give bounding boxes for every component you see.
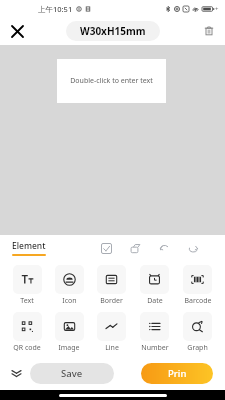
staticText: Barcode <box>184 296 212 306</box>
button[interactable]: Close <box>6 20 28 42</box>
button[interactable]: Prin <box>141 363 213 384</box>
staticText: Save <box>61 367 83 380</box>
button[interactable]: Delete <box>199 21 219 41</box>
staticText: Icon <box>62 296 77 306</box>
button[interactable]: Graph <box>176 312 219 353</box>
button[interactable]: Element <box>12 240 46 256</box>
button[interactable]: Copy <box>127 240 143 256</box>
button[interactable]: Double-click to enter text <box>57 59 166 103</box>
button[interactable]: Select <box>98 240 114 256</box>
button[interactable]: Image <box>48 312 90 353</box>
button[interactable]: Line <box>90 312 133 353</box>
staticText: QR code <box>13 343 41 353</box>
button[interactable]: Border <box>90 265 133 306</box>
button[interactable]: W30xH15mm <box>66 21 160 41</box>
staticText: Date <box>147 296 163 306</box>
button[interactable]: Date <box>133 265 176 306</box>
staticText: + <box>215 5 219 13</box>
button[interactable]: Number <box>133 312 176 353</box>
staticText: Element <box>12 240 46 252</box>
staticText: Text <box>20 296 34 306</box>
staticText: W30xH15mm <box>80 24 146 38</box>
staticText: 上午10:51 <box>38 4 73 14</box>
staticText: Number <box>141 343 169 353</box>
button[interactable]: Undo <box>156 240 172 256</box>
button[interactable]: Redo <box>185 240 201 256</box>
button[interactable]: Barcode <box>176 265 219 306</box>
button[interactable]: Collapse <box>6 363 26 383</box>
staticText: Border <box>100 296 123 306</box>
staticText: Image <box>58 343 80 353</box>
staticText: Prin <box>168 367 187 380</box>
button[interactable]: Text <box>6 265 48 306</box>
staticText: Double-click to enter text <box>70 76 153 86</box>
button[interactable]: QR code <box>6 312 48 353</box>
button[interactable]: Save <box>30 363 114 384</box>
staticText: Graph <box>187 343 208 353</box>
staticText: Line <box>105 343 119 353</box>
button[interactable]: Icon <box>48 265 90 306</box>
